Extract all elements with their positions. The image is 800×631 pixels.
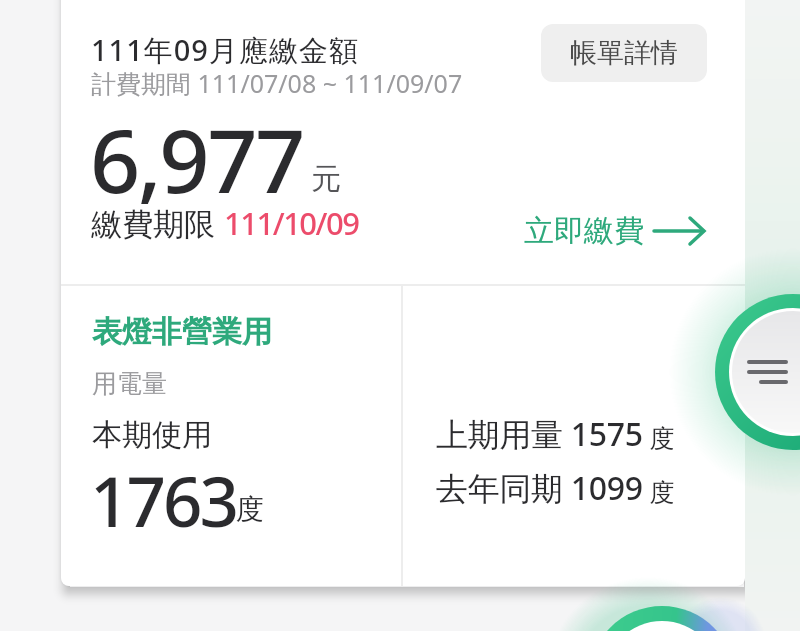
staticText: 上期用量 1575 [436,412,643,456]
staticText: 去年同期 1099 [436,466,643,510]
staticText: 元 [311,160,341,198]
staticText: 度 [236,492,264,527]
staticText: 度 [643,420,675,454]
staticText: 111年09月應繳金額 [91,30,359,70]
button[interactable]: 帳單詳情 [541,24,707,82]
button[interactable] [589,606,735,631]
staticText: 計費期間 111/07/08 ~ 111/09/07 [91,66,463,100]
button[interactable] [715,294,800,450]
staticText: 6,977 [90,99,303,219]
staticText: 度 [643,474,675,508]
staticText: 本期使用 [92,416,212,454]
staticText: 用電量 [92,368,167,399]
staticText: 立即繳費 [524,212,644,250]
staticText: 表燈非營業用 [92,313,272,351]
staticText: 111/10/09 [224,202,359,244]
staticText: 繳費期限 [91,202,224,244]
staticText: 1763 [90,453,236,547]
staticText: 帳單詳情 [570,36,678,70]
button[interactable]: 立即繳費 [524,212,706,250]
